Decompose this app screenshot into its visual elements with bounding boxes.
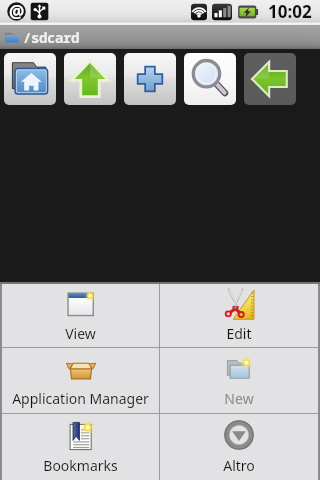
button[interactable]: Back <box>244 53 296 105</box>
button[interactable]: Application Manager <box>2 348 159 413</box>
button[interactable]: New <box>124 53 176 105</box>
button[interactable]: Up one level <box>64 53 116 105</box>
button[interactable]: New <box>160 348 318 413</box>
staticText: New <box>224 389 254 408</box>
button[interactable]: Altro <box>160 414 318 480</box>
staticText: /sdcard <box>23 28 79 47</box>
staticText: View <box>65 324 96 343</box>
button[interactable]: Search <box>184 53 236 105</box>
staticText: Bookmarks <box>43 456 118 475</box>
button[interactable]: Edit <box>160 284 318 347</box>
staticText: Edit <box>226 324 252 343</box>
staticText: @ <box>9 0 25 21</box>
staticText: Application Manager <box>12 389 149 408</box>
button[interactable]: Home <box>4 53 56 105</box>
button[interactable]: Bookmarks <box>2 414 159 480</box>
staticText: 10:02 <box>268 0 312 23</box>
button[interactable]: View <box>2 284 159 347</box>
staticText: Altro <box>223 456 255 475</box>
